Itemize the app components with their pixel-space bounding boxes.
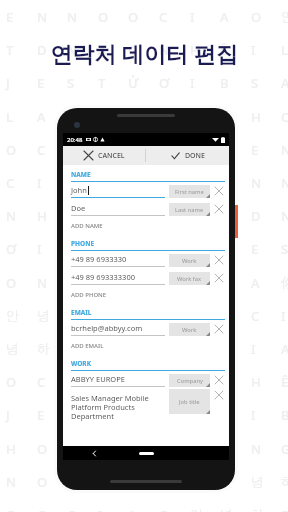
staticText: B (190, 440, 199, 458)
staticText: Ử (190, 406, 201, 424)
staticText: N (281, 174, 288, 192)
staticText: J (6, 74, 10, 92)
button[interactable]: ABBYY EUROPE (71, 371, 225, 389)
button[interactable]: Remove Job title (213, 389, 225, 401)
staticText: C (37, 141, 46, 159)
staticText: O (251, 8, 262, 26)
button[interactable]: Work (169, 254, 210, 267)
button[interactable]: +49 89 6933330 (71, 251, 225, 269)
staticText: E (67, 340, 75, 358)
staticText: D (37, 41, 47, 59)
button[interactable]: ADD NAME (71, 218, 229, 234)
staticText: E (37, 406, 45, 424)
staticText: O (98, 8, 109, 26)
staticText: +49 89 6933330 (71, 254, 127, 264)
staticText: Work (182, 326, 197, 334)
button[interactable]: Remove Last name (213, 203, 225, 215)
staticText: E (251, 240, 259, 258)
staticText: 안 (190, 506, 203, 512)
button[interactable]: Home (139, 452, 154, 455)
staticText: H (190, 41, 200, 59)
staticText: L (67, 440, 74, 458)
staticText: N (159, 307, 170, 325)
staticText: O (159, 108, 170, 126)
staticText: 하 (220, 141, 233, 157)
staticText: A (281, 74, 288, 92)
staticText: Last name (175, 206, 204, 214)
staticText: O (159, 506, 170, 512)
button[interactable]: Work fax (169, 272, 210, 285)
staticText: I (251, 406, 256, 424)
button[interactable]: Remove Work (213, 254, 225, 266)
staticText: D (251, 207, 261, 225)
staticText: N (98, 340, 109, 358)
staticText: O (6, 141, 17, 159)
button[interactable]: Remove Work fax (213, 272, 225, 284)
staticText: T (6, 41, 14, 59)
button[interactable]: Job title (169, 389, 210, 414)
staticText: 하 (281, 473, 288, 489)
staticText: A (159, 473, 168, 491)
staticText: O (128, 274, 139, 292)
staticText: N (251, 174, 262, 192)
staticText: T (220, 207, 228, 225)
staticText: O (159, 207, 170, 225)
staticText: N (67, 8, 78, 26)
button[interactable]: First name (169, 185, 210, 198)
button[interactable]: John (71, 182, 225, 200)
staticText: Ê (281, 373, 288, 391)
staticText: N (128, 373, 139, 391)
staticText: 안 (159, 141, 172, 157)
button[interactable]: Sales Manager Mobile Platform Products D… (71, 389, 225, 422)
staticText: C (67, 506, 76, 512)
staticText: John (71, 185, 87, 195)
button[interactable]: Remove Work (213, 323, 225, 335)
button[interactable]: Remove First name (213, 185, 225, 197)
staticText: I (128, 473, 133, 491)
staticText: I (281, 307, 286, 325)
staticText: Ơ (159, 74, 170, 92)
button[interactable]: Remove Company (213, 374, 225, 386)
staticText: O (220, 307, 231, 325)
button[interactable]: CANCEL (63, 146, 145, 165)
staticText: I (98, 506, 103, 512)
button[interactable]: Work (169, 323, 210, 336)
staticText: T (98, 74, 106, 92)
staticText: 하 (37, 340, 50, 356)
staticText: O (6, 506, 17, 512)
staticText: 20:48 (67, 136, 83, 144)
staticText: 안 (128, 174, 141, 190)
button[interactable]: DONE (146, 146, 229, 165)
staticText: O (6, 274, 17, 292)
staticText: O (98, 174, 109, 192)
staticText: Sales Manager Mobile Platform Products D… (71, 393, 149, 421)
staticText: 안 (220, 473, 233, 489)
button[interactable]: ADD PHONE (71, 287, 229, 303)
staticText: A (281, 340, 288, 358)
staticText: ADD EMAIL (71, 342, 104, 350)
button[interactable]: Last name (169, 203, 210, 216)
staticText: E (220, 174, 228, 192)
staticText: WORK (71, 359, 91, 368)
staticText: O (190, 307, 201, 325)
button[interactable]: +49 89 693333300 (71, 269, 225, 287)
button[interactable]: Doe (71, 200, 225, 218)
staticText: S (251, 74, 259, 92)
button[interactable]: Back (89, 448, 99, 458)
staticText: E (251, 141, 259, 159)
staticText: bcrhelp@abbyy.com (71, 323, 143, 333)
staticText: L (6, 108, 13, 126)
staticText: N (128, 307, 139, 325)
button[interactable]: bcrhelp@abbyy.com (71, 320, 225, 338)
staticText: O (128, 8, 139, 26)
staticText: C (37, 373, 46, 391)
staticText: I (190, 74, 195, 92)
staticText: I (251, 340, 256, 358)
staticText: H (251, 373, 261, 391)
staticText: Job title (179, 398, 200, 406)
button[interactable]: Company (169, 374, 210, 387)
button[interactable]: ADD EMAIL (71, 338, 229, 354)
